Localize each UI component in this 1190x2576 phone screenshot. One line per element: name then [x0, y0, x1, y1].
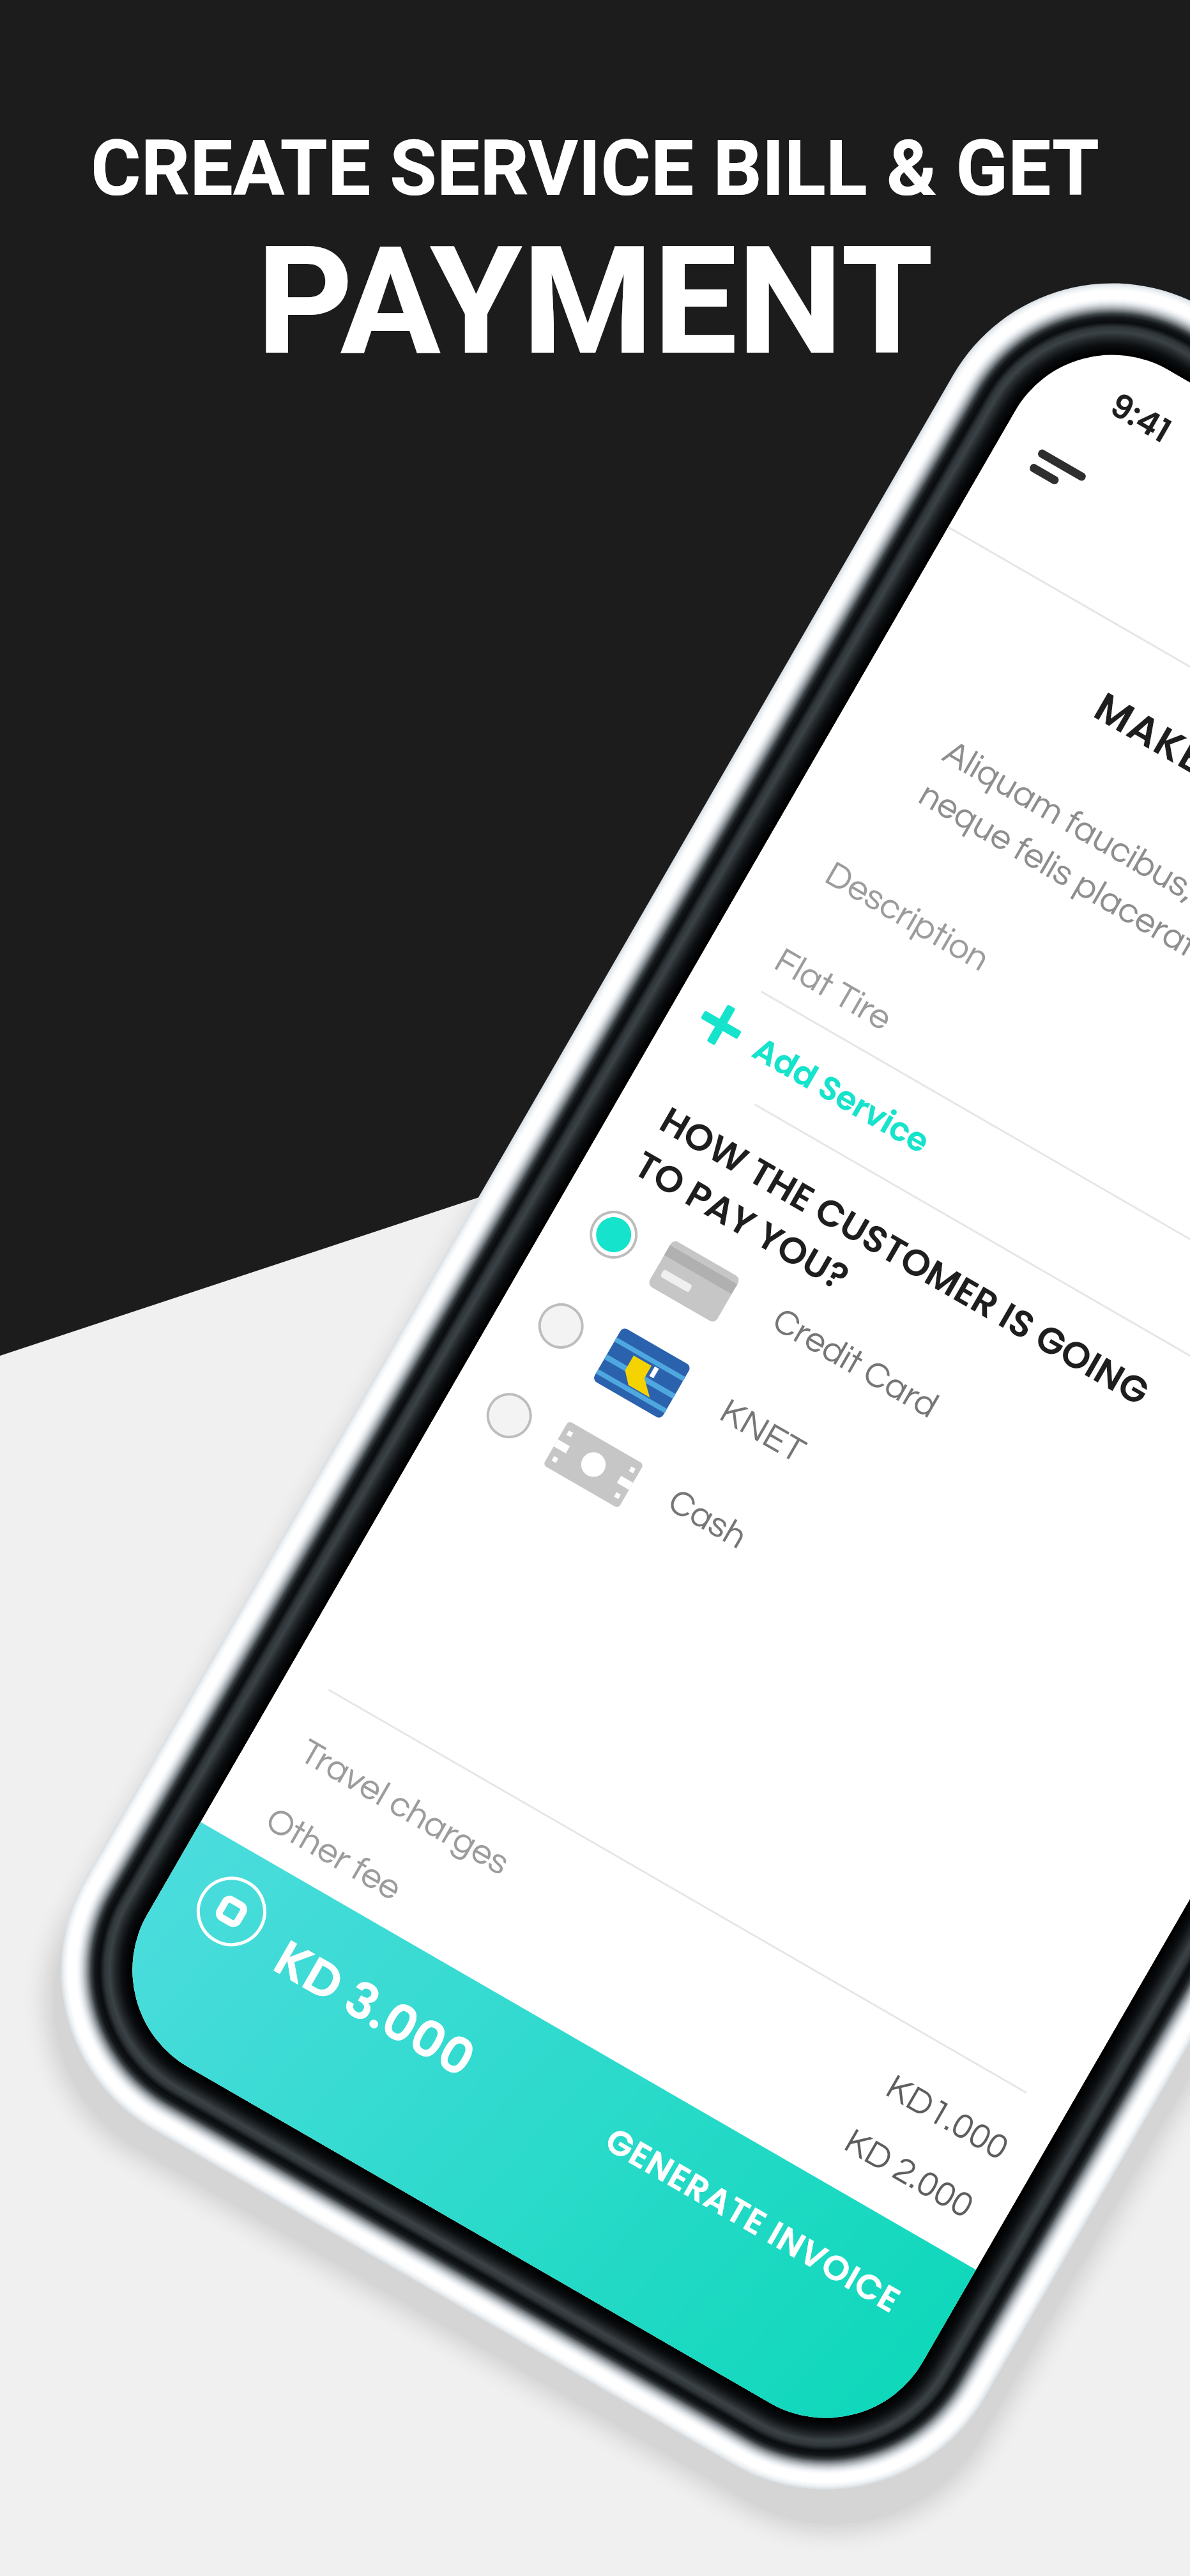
staticText: PAYMENT — [0, 214, 1190, 389]
button[interactable]: KNET — [479, 1249, 1190, 1787]
button[interactable]: Add Service — [684, 988, 940, 1167]
staticText: Credit Card — [766, 1301, 944, 1426]
staticText: KD 3.000 — [262, 1923, 488, 2094]
staticText: KD1.000 — [880, 2069, 1014, 2168]
staticText: Travel charges — [294, 1733, 515, 1882]
button[interactable]: Open menu — [1019, 441, 1108, 518]
staticText: CREATE SERVICE BILL & GET — [0, 124, 1190, 214]
button[interactable]: Cash — [427, 1338, 1190, 1877]
staticText: KD 2.000 — [838, 2123, 980, 2226]
staticText: Description — [819, 855, 996, 979]
staticText: Flat Tire — [768, 942, 898, 1038]
staticText: Cash — [662, 1482, 753, 1556]
button[interactable]: KD 3.000 — [91, 1822, 976, 2459]
staticText: Aliquam faucibus, odio nec neque felis p… — [913, 734, 1190, 1023]
staticText: MAKE A BILL — [1084, 679, 1190, 855]
staticText: 9:41 — [1102, 382, 1180, 454]
staticText: KNET — [714, 1393, 811, 1471]
staticText: GENERATE INVOICE — [597, 2116, 910, 2325]
staticText: Other fee — [260, 1801, 408, 1908]
staticText: Add Service — [745, 1026, 938, 1164]
button[interactable]: Credit Card — [532, 1157, 1190, 1696]
staticText: HOW THE CUSTOMER IS GOING TO PAY YOU? — [625, 1094, 1159, 1462]
